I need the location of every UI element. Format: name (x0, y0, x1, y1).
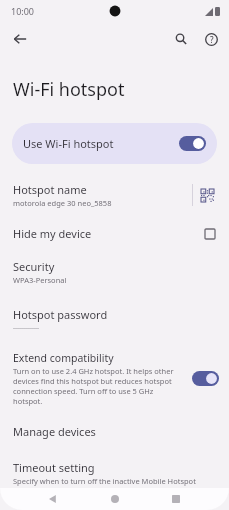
staticText: Security (13, 259, 55, 274)
staticText: Specify when to turn off the inactive Mo… (13, 476, 213, 496)
staticText: motorola edge 30 neo_5858 (13, 198, 112, 208)
button[interactable]: Search (167, 25, 195, 53)
staticText: Hide my device (13, 226, 205, 241)
button[interactable]: Use Wi-Fi hotspot (12, 123, 217, 164)
staticText: ? (210, 34, 214, 45)
button[interactable]: Hotspot password (0, 305, 229, 335)
button[interactable]: Hotspot name (0, 179, 229, 211)
button[interactable]: Share hotspot QR code (193, 181, 221, 209)
button[interactable]: Home (104, 488, 126, 510)
staticText: Timeout setting (13, 460, 95, 475)
staticText: Manage devices (13, 424, 96, 439)
button[interactable]: Extend compatibility (0, 349, 229, 408)
button[interactable]: Manage devices (0, 421, 229, 442)
staticText: Hotspot password (13, 307, 108, 322)
staticText: Hotspot name (13, 182, 87, 197)
button[interactable]: Back (5, 24, 35, 54)
staticText: 10:00 (11, 5, 35, 17)
button[interactable]: Hide my device (0, 223, 229, 244)
staticText: Extend compatibility (13, 351, 114, 365)
staticText: Use Wi-Fi hotspot (23, 136, 179, 151)
staticText: WPA3-Personal (13, 275, 67, 285)
staticText: Turn on to use 2.4 GHz hotspot. It helps… (13, 366, 184, 406)
button[interactable]: Security (0, 257, 229, 287)
button[interactable]: Help (197, 25, 225, 53)
button[interactable]: Recent apps (165, 488, 187, 510)
staticText: ············· (13, 323, 40, 333)
staticText: Wi-Fi hotspot (13, 77, 125, 102)
button[interactable]: Timeout setting (0, 458, 229, 498)
button[interactable]: Back (42, 488, 64, 510)
